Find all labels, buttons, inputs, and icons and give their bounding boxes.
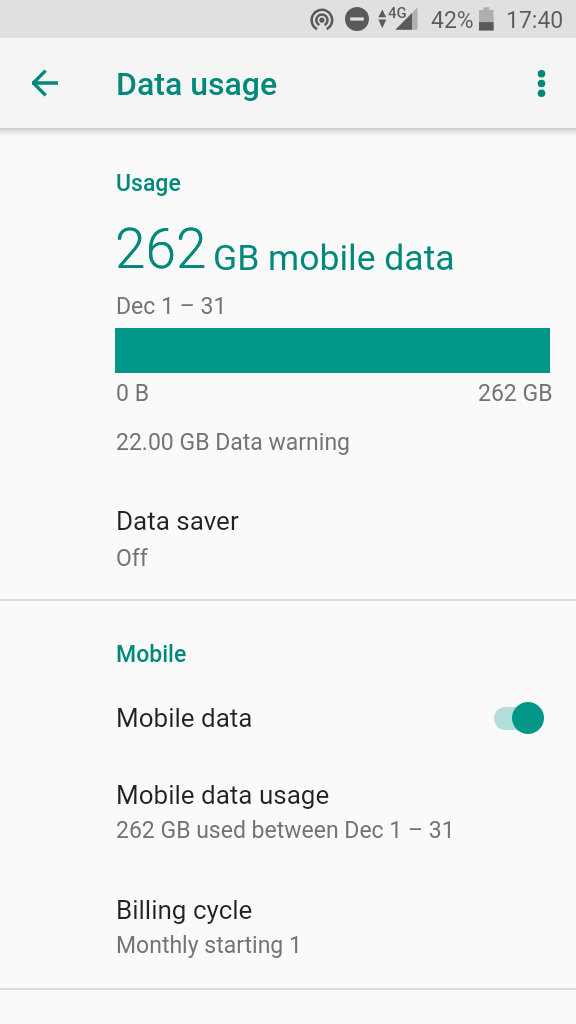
- staticText: 262 GB used between Dec 1 – 31: [116, 817, 455, 844]
- staticText: 262: [115, 217, 207, 281]
- staticText: 42%: [431, 7, 474, 34]
- button[interactable]: Data saver: [0, 490, 576, 580]
- staticText: Mobile: [116, 641, 187, 668]
- staticText: Dec 1 – 31: [116, 293, 227, 320]
- button[interactable]: Mobile data usage: [0, 766, 576, 856]
- button[interactable]: More options: [514, 56, 568, 110]
- staticText: Monthly starting 1: [116, 932, 302, 959]
- button[interactable]: Mobile data: [0, 690, 576, 746]
- staticText: Billing cycle: [116, 895, 253, 925]
- staticText: 4G: [388, 4, 407, 22]
- staticText: Usage: [116, 170, 181, 197]
- button[interactable]: Billing cycle: [0, 880, 576, 970]
- staticText: Mobile data: [116, 703, 253, 733]
- staticText: 22.00 GB Data warning: [116, 429, 351, 456]
- staticText: Data usage: [116, 65, 278, 103]
- staticText: Mobile data usage: [116, 780, 330, 810]
- staticText: 262: [115, 217, 207, 281]
- button[interactable]: Mobile data on: [488, 698, 550, 738]
- staticText: Off: [116, 545, 148, 572]
- staticText: GB mobile data: [213, 237, 455, 279]
- staticText: Data saver: [116, 506, 239, 536]
- staticText: 17:40: [506, 7, 564, 34]
- staticText: 262 GB: [478, 380, 553, 407]
- staticText: 0 B: [116, 380, 149, 407]
- button[interactable]: Navigate up: [18, 56, 72, 110]
